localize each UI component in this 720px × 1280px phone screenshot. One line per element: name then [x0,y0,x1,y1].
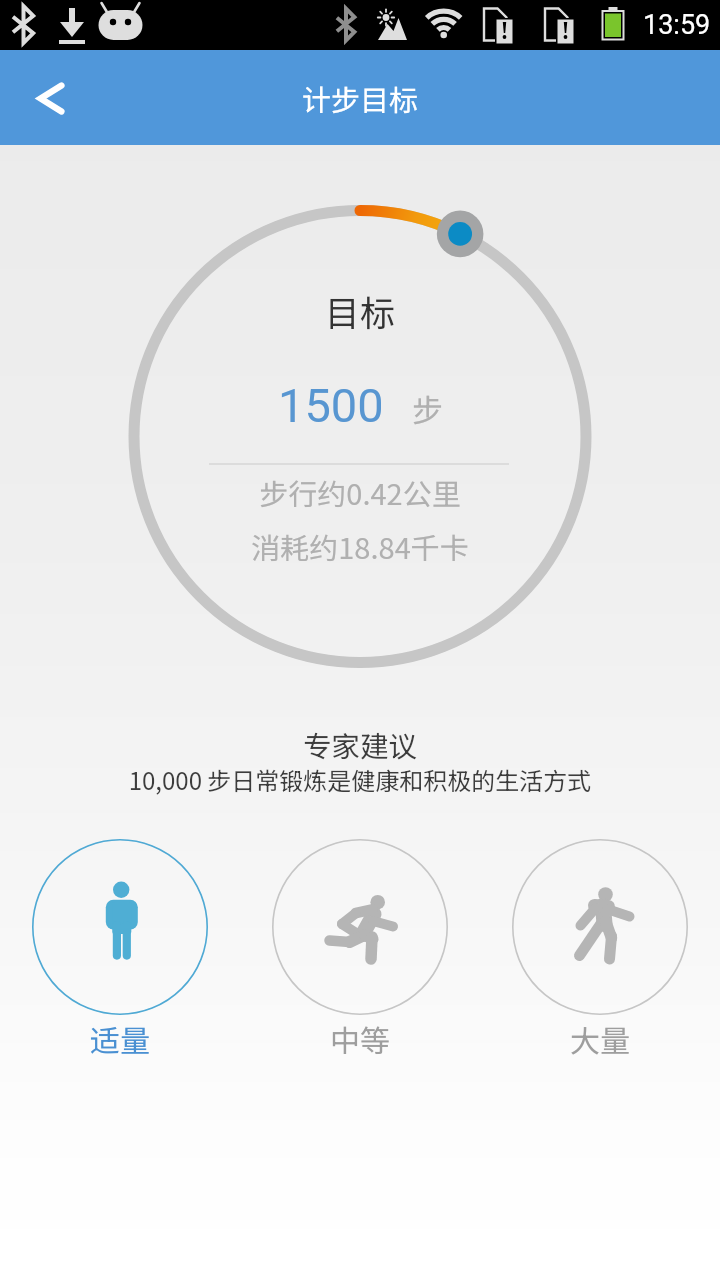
staticText: 1500 [278,378,384,433]
staticText: 中等 [330,1017,390,1060]
button[interactable]: 适量 [0,839,240,1060]
button[interactable]: 大量 [480,839,720,1060]
staticText: 大量 [570,1017,630,1060]
button[interactable]: Back [0,50,90,145]
staticText: 步行约0.42公里 [0,471,720,513]
staticText: 步 [412,386,443,431]
staticText: 消耗约18.84千卡 [0,525,720,567]
staticText: 计步目标 [302,77,419,119]
button[interactable]: 中等 [240,839,480,1060]
staticText: 10,000 步日常锻炼是健康和积极的生活方式 [0,762,720,797]
button[interactable]: Adjust step goal [434,208,486,260]
staticText: 13:59 [643,9,711,41]
staticText: 目标 [0,285,720,336]
staticText: 专家建议 [0,724,720,765]
staticText: 适量 [90,1017,150,1060]
